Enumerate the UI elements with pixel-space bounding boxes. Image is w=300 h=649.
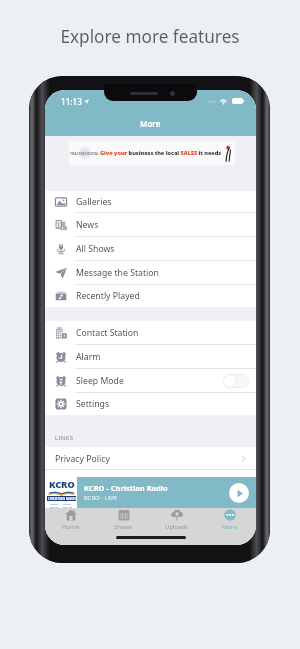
button[interactable]: Home xyxy=(45,508,97,531)
button[interactable]: Uploads xyxy=(150,508,203,531)
staticText: Explore more features xyxy=(0,25,300,48)
staticText: 11:13 xyxy=(61,96,82,107)
button[interactable]: Settings xyxy=(45,393,256,415)
staticText: More xyxy=(140,118,161,129)
staticText: Recently Played xyxy=(76,290,140,302)
button[interactable]: Sleep Mode toggle xyxy=(223,374,249,388)
staticText: TRACON DIGITAL xyxy=(70,151,99,156)
staticText: Contact Station xyxy=(76,327,139,339)
staticText: 106.7 FM xyxy=(62,505,73,508)
button[interactable]: Privacy Policy xyxy=(45,447,256,470)
staticText: KCRO xyxy=(49,478,75,491)
staticText: Uploads xyxy=(165,523,189,531)
button[interactable]: Contact Station xyxy=(45,321,256,345)
staticText: Shows xyxy=(114,523,133,531)
staticText: Lincoln xyxy=(63,502,72,505)
staticText: Galleries xyxy=(76,196,112,208)
button[interactable]: Alarm xyxy=(45,345,256,369)
staticText: Omaha xyxy=(50,502,59,505)
button[interactable]: Shows xyxy=(97,508,150,531)
staticText: Give your business the local SALES it ne… xyxy=(100,149,222,157)
staticText: Privacy Policy xyxy=(55,453,110,465)
staticText: KCRO - LIVE xyxy=(84,494,117,502)
button[interactable]: All Shows xyxy=(45,237,256,261)
staticText: Sleep Mode xyxy=(76,375,124,387)
button[interactable]: More xyxy=(203,508,256,531)
button[interactable]: Sleep Mode xyxy=(45,369,256,393)
staticText: 660 AM xyxy=(50,505,59,508)
staticText: LINKS xyxy=(55,434,74,442)
staticText: Alarm xyxy=(76,351,101,363)
button[interactable]: News xyxy=(45,213,256,237)
button[interactable]: Play xyxy=(229,483,249,503)
staticText: KCRO - Christian Radio xyxy=(84,483,168,493)
staticText: Home xyxy=(62,523,80,531)
staticText: News xyxy=(76,219,99,231)
staticText: More xyxy=(222,523,237,531)
button[interactable]: TRACON DIGITAL xyxy=(69,141,235,165)
staticText: All Shows xyxy=(76,243,115,255)
button[interactable]: Recently Played xyxy=(45,285,256,307)
staticText: Message the Station xyxy=(76,267,159,279)
button[interactable]: Message the Station xyxy=(45,261,256,285)
staticText: CHRISTIAN RADIO xyxy=(48,497,76,501)
staticText: Settings xyxy=(76,398,110,410)
button[interactable]: Galleries xyxy=(45,191,256,213)
